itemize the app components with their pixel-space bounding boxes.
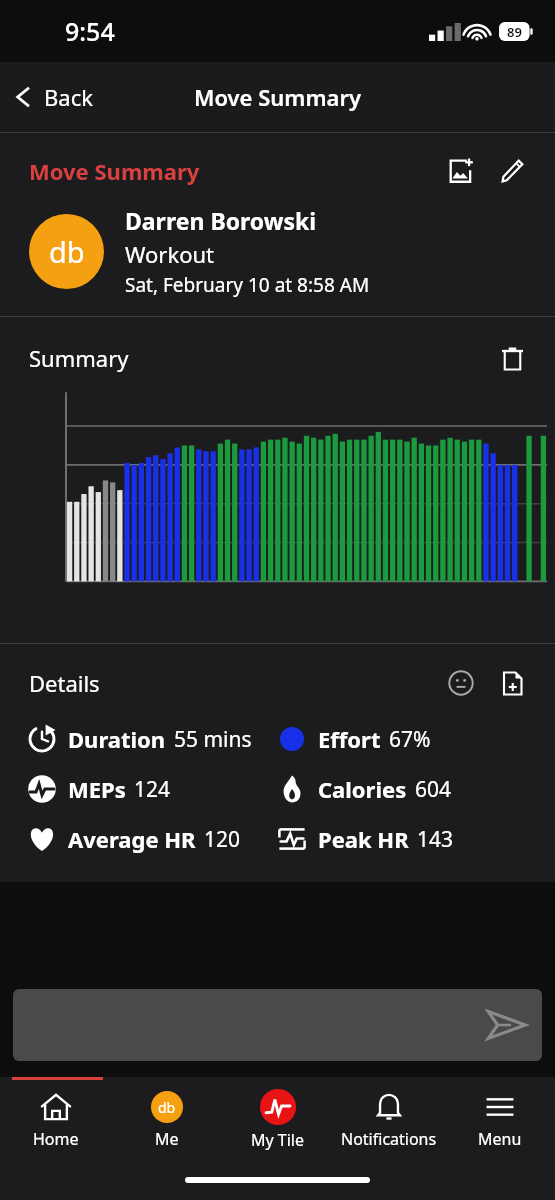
staticText: Move Summary: [29, 156, 200, 186]
staticText: Calories: [318, 774, 407, 804]
button[interactable]: Edit: [491, 149, 535, 193]
staticText: 120: [204, 825, 241, 854]
staticText: Menu: [478, 1128, 522, 1150]
staticText: 143: [417, 825, 454, 854]
button[interactable]: Back: [0, 74, 107, 120]
staticText: Details: [29, 668, 100, 698]
button[interactable]: Menu: [444, 1080, 555, 1160]
staticText: Home: [33, 1128, 79, 1150]
button[interactable]: My Tile: [222, 1080, 333, 1160]
button[interactable]: db: [29, 214, 104, 289]
staticText: 124: [134, 775, 171, 804]
button[interactable]: db: [111, 1080, 222, 1160]
staticText: Average HR: [68, 824, 196, 854]
button[interactable]: Delete: [491, 337, 533, 379]
staticText: db: [158, 1098, 176, 1117]
staticText: Back: [44, 82, 93, 112]
button[interactable]: Peak HR: [277, 818, 555, 860]
staticText: Peak HR: [318, 824, 409, 854]
staticText: Sat, February 10 at 8:58 AM: [125, 272, 370, 298]
staticText: Notifications: [341, 1128, 437, 1150]
staticText: My Tile: [251, 1129, 305, 1151]
staticText: Darren Borowski: [125, 205, 317, 236]
staticText: Duration: [68, 724, 166, 754]
staticText: Effort: [318, 724, 381, 754]
staticText: 89: [507, 23, 522, 41]
staticText: 67%: [389, 725, 431, 754]
button[interactable]: Average HR: [0, 818, 277, 860]
staticText: 604: [415, 775, 452, 804]
staticText: Summary: [29, 343, 129, 373]
button[interactable]: Calories: [277, 768, 555, 810]
staticText: Me: [155, 1128, 179, 1150]
button[interactable]: Duration: [0, 718, 277, 760]
button[interactable]: Send: [13, 989, 542, 1061]
staticText: Workout: [125, 239, 215, 269]
button[interactable]: Send: [476, 995, 536, 1055]
staticText: 9:54: [65, 14, 115, 48]
button[interactable]: Add note: [491, 662, 533, 704]
button[interactable]: Feeling: [440, 662, 482, 704]
button[interactable]: Home: [0, 1080, 111, 1160]
button[interactable]: Notifications: [333, 1080, 444, 1160]
staticText: db: [49, 232, 85, 271]
button[interactable]: Effort: [277, 718, 555, 760]
staticText: 55 mins: [174, 725, 252, 754]
staticText: Move Summary: [194, 82, 362, 112]
button[interactable]: Add photo: [439, 149, 483, 193]
button[interactable]: MEPs: [0, 768, 277, 810]
staticText: MEPs: [68, 774, 126, 804]
